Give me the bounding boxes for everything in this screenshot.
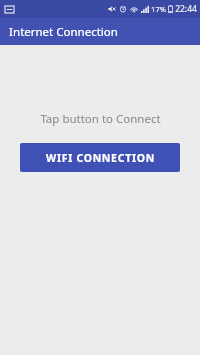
staticText: 17%: [151, 4, 166, 14]
button[interactable]: WIFI CONNECTION: [20, 143, 180, 172]
staticText: WIFI CONNECTION: [46, 151, 155, 165]
staticText: 22:44: [175, 3, 197, 15]
staticText: Tap button to Connect: [40, 111, 161, 127]
staticText: Internet Connection: [9, 24, 118, 40]
